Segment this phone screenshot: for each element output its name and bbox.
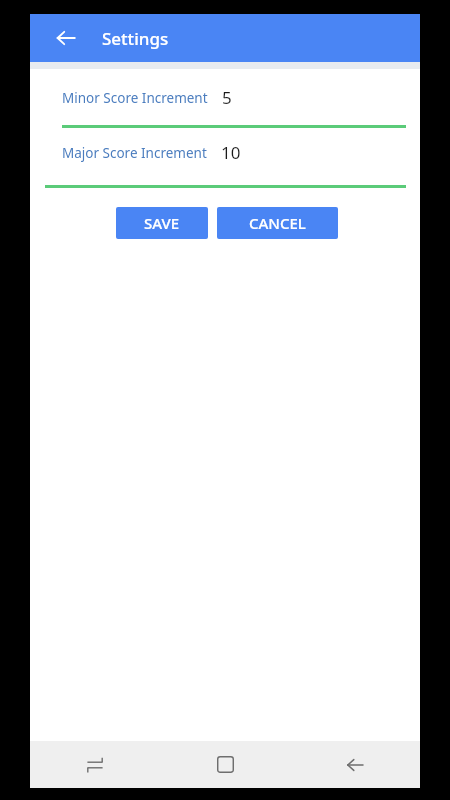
button[interactable]: SAVE bbox=[116, 207, 208, 239]
staticText: 10 bbox=[221, 141, 241, 164]
staticText: Minor Score Increment bbox=[62, 89, 208, 107]
staticText: Major Score Increment bbox=[62, 144, 207, 162]
button[interactable]: Recent apps bbox=[30, 741, 160, 788]
button[interactable]: Home bbox=[160, 741, 290, 788]
staticText: SAVE bbox=[144, 213, 180, 233]
button[interactable]: Back bbox=[290, 741, 420, 788]
staticText: CANCEL bbox=[249, 213, 306, 233]
button[interactable]: CANCEL bbox=[217, 207, 338, 239]
staticText: Settings bbox=[102, 27, 169, 50]
button[interactable]: Major Score Increment bbox=[30, 129, 420, 176]
button[interactable]: Minor Score Increment bbox=[30, 69, 420, 125]
staticText: 5 bbox=[222, 86, 232, 109]
button[interactable]: Back bbox=[48, 20, 84, 56]
